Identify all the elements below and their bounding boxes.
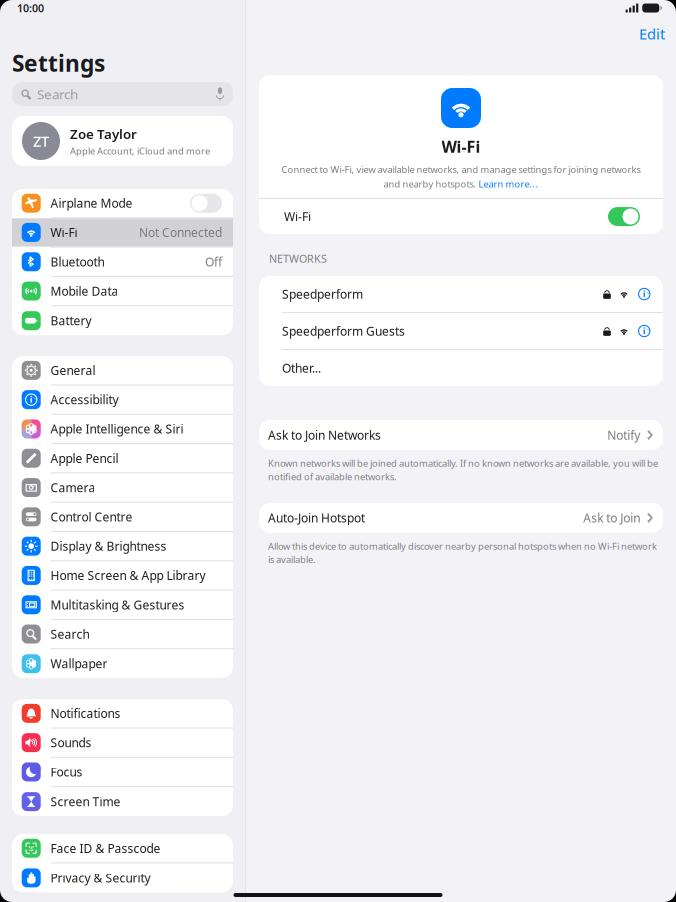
staticText: Apple Pencil <box>50 450 118 466</box>
staticText: Speedperform Guests <box>282 323 405 339</box>
button[interactable]: Privacy & Security <box>12 863 233 892</box>
staticText: Control Centre <box>50 509 132 525</box>
staticText: Off <box>205 254 222 270</box>
staticText: Search <box>37 85 78 103</box>
staticText: Other... <box>282 360 321 376</box>
staticText: Wi-Fi <box>50 224 77 240</box>
staticText: Notify <box>607 427 640 443</box>
staticText: Speedperform <box>282 286 363 302</box>
staticText: Auto-Join Hotspot <box>268 510 365 526</box>
button[interactable]: Display & Brightness <box>12 532 233 561</box>
button[interactable]: Search <box>12 620 233 649</box>
staticText: Screen Time <box>50 794 120 809</box>
button[interactable]: ZT <box>0 116 245 166</box>
staticText: Home Screen & App Library <box>50 567 205 583</box>
button[interactable]: Apple Pencil <box>12 444 233 473</box>
staticText: Mobile Data <box>50 283 118 299</box>
button[interactable]: Home Screen & App Library <box>12 561 233 591</box>
staticText: Zoe Taylor <box>70 125 137 143</box>
button[interactable]: Sounds <box>12 728 233 758</box>
staticText: Battery <box>50 313 91 329</box>
button[interactable]: Search <box>0 82 245 106</box>
staticText: Wi-Fi <box>284 209 311 224</box>
staticText: Display & Brightness <box>50 538 166 554</box>
button[interactable]: Face ID & Passcode <box>12 834 233 863</box>
staticText: Focus <box>50 764 82 780</box>
staticText: Camera <box>50 480 95 495</box>
button[interactable]: Auto-Join Hotspot <box>259 503 663 533</box>
button[interactable]: Wi-Fi <box>12 218 233 248</box>
button[interactable]: Airplane Mode <box>12 189 233 218</box>
button[interactable]: Focus <box>12 758 233 787</box>
staticText: Bluetooth <box>50 254 104 270</box>
staticText: Face ID & Passcode <box>50 840 160 856</box>
button[interactable]: Screen Time <box>12 787 233 816</box>
staticText: Apple Account, iCloud and more <box>70 145 210 157</box>
staticText: Privacy & Security <box>50 870 150 886</box>
staticText: ZT <box>33 131 49 151</box>
button[interactable]: Wallpaper <box>12 649 233 678</box>
staticText: Accessibility <box>50 392 118 408</box>
staticText: notified of available networks. <box>268 470 397 483</box>
staticText: Search <box>50 626 89 642</box>
staticText: Not Connected <box>139 224 222 240</box>
staticText: Allow this device to automatically disco… <box>268 540 657 552</box>
staticText: Ask to Join Networks <box>268 427 381 443</box>
staticText: is available. <box>268 553 316 566</box>
button[interactable]: Speedperform Guests <box>259 313 663 349</box>
staticText: and nearby hotspots. <box>383 178 478 190</box>
button[interactable]: Edit <box>632 19 672 48</box>
staticText: Wallpaper <box>50 656 107 672</box>
button[interactable]: Other... <box>259 350 663 386</box>
staticText: Edit <box>639 24 665 43</box>
button[interactable]: Learn more... <box>478 178 538 190</box>
staticText: Learn more... <box>478 178 538 190</box>
button[interactable]: Control Centre <box>12 503 233 532</box>
button[interactable]: Ask to Join Networks <box>259 420 663 450</box>
button[interactable]: Network information <box>629 287 663 301</box>
button[interactable]: Apple Intelligence & Siri <box>12 415 233 444</box>
staticText: Ask to Join <box>583 510 640 526</box>
button[interactable]: Bluetooth <box>12 248 233 277</box>
button[interactable]: Battery <box>12 306 233 335</box>
button[interactable]: Multitasking & Gestures <box>12 591 233 620</box>
staticText: 10:00 <box>17 1 44 15</box>
staticText: NETWORKS <box>269 251 327 266</box>
staticText: Sounds <box>50 735 91 751</box>
staticText: Apple Intelligence & Siri <box>50 421 183 437</box>
staticText: General <box>50 362 95 378</box>
button[interactable]: General <box>12 356 233 385</box>
staticText: Notifications <box>50 705 120 721</box>
staticText: Known networks will be joined automatica… <box>268 457 658 469</box>
staticText: Airplane Mode <box>50 195 132 211</box>
button[interactable]: Notifications <box>12 699 233 728</box>
staticText: Connect to Wi-Fi, view available network… <box>281 163 640 176</box>
staticText: Settings <box>12 48 105 78</box>
button[interactable]: Camera <box>12 473 233 503</box>
button[interactable]: Accessibility <box>12 385 233 415</box>
button[interactable]: Speedperform <box>259 276 663 312</box>
staticText: Multitasking & Gestures <box>50 597 184 613</box>
staticText: Wi-Fi <box>441 136 480 157</box>
button[interactable]: Network information <box>629 324 663 338</box>
button[interactable]: Mobile Data <box>12 277 233 306</box>
